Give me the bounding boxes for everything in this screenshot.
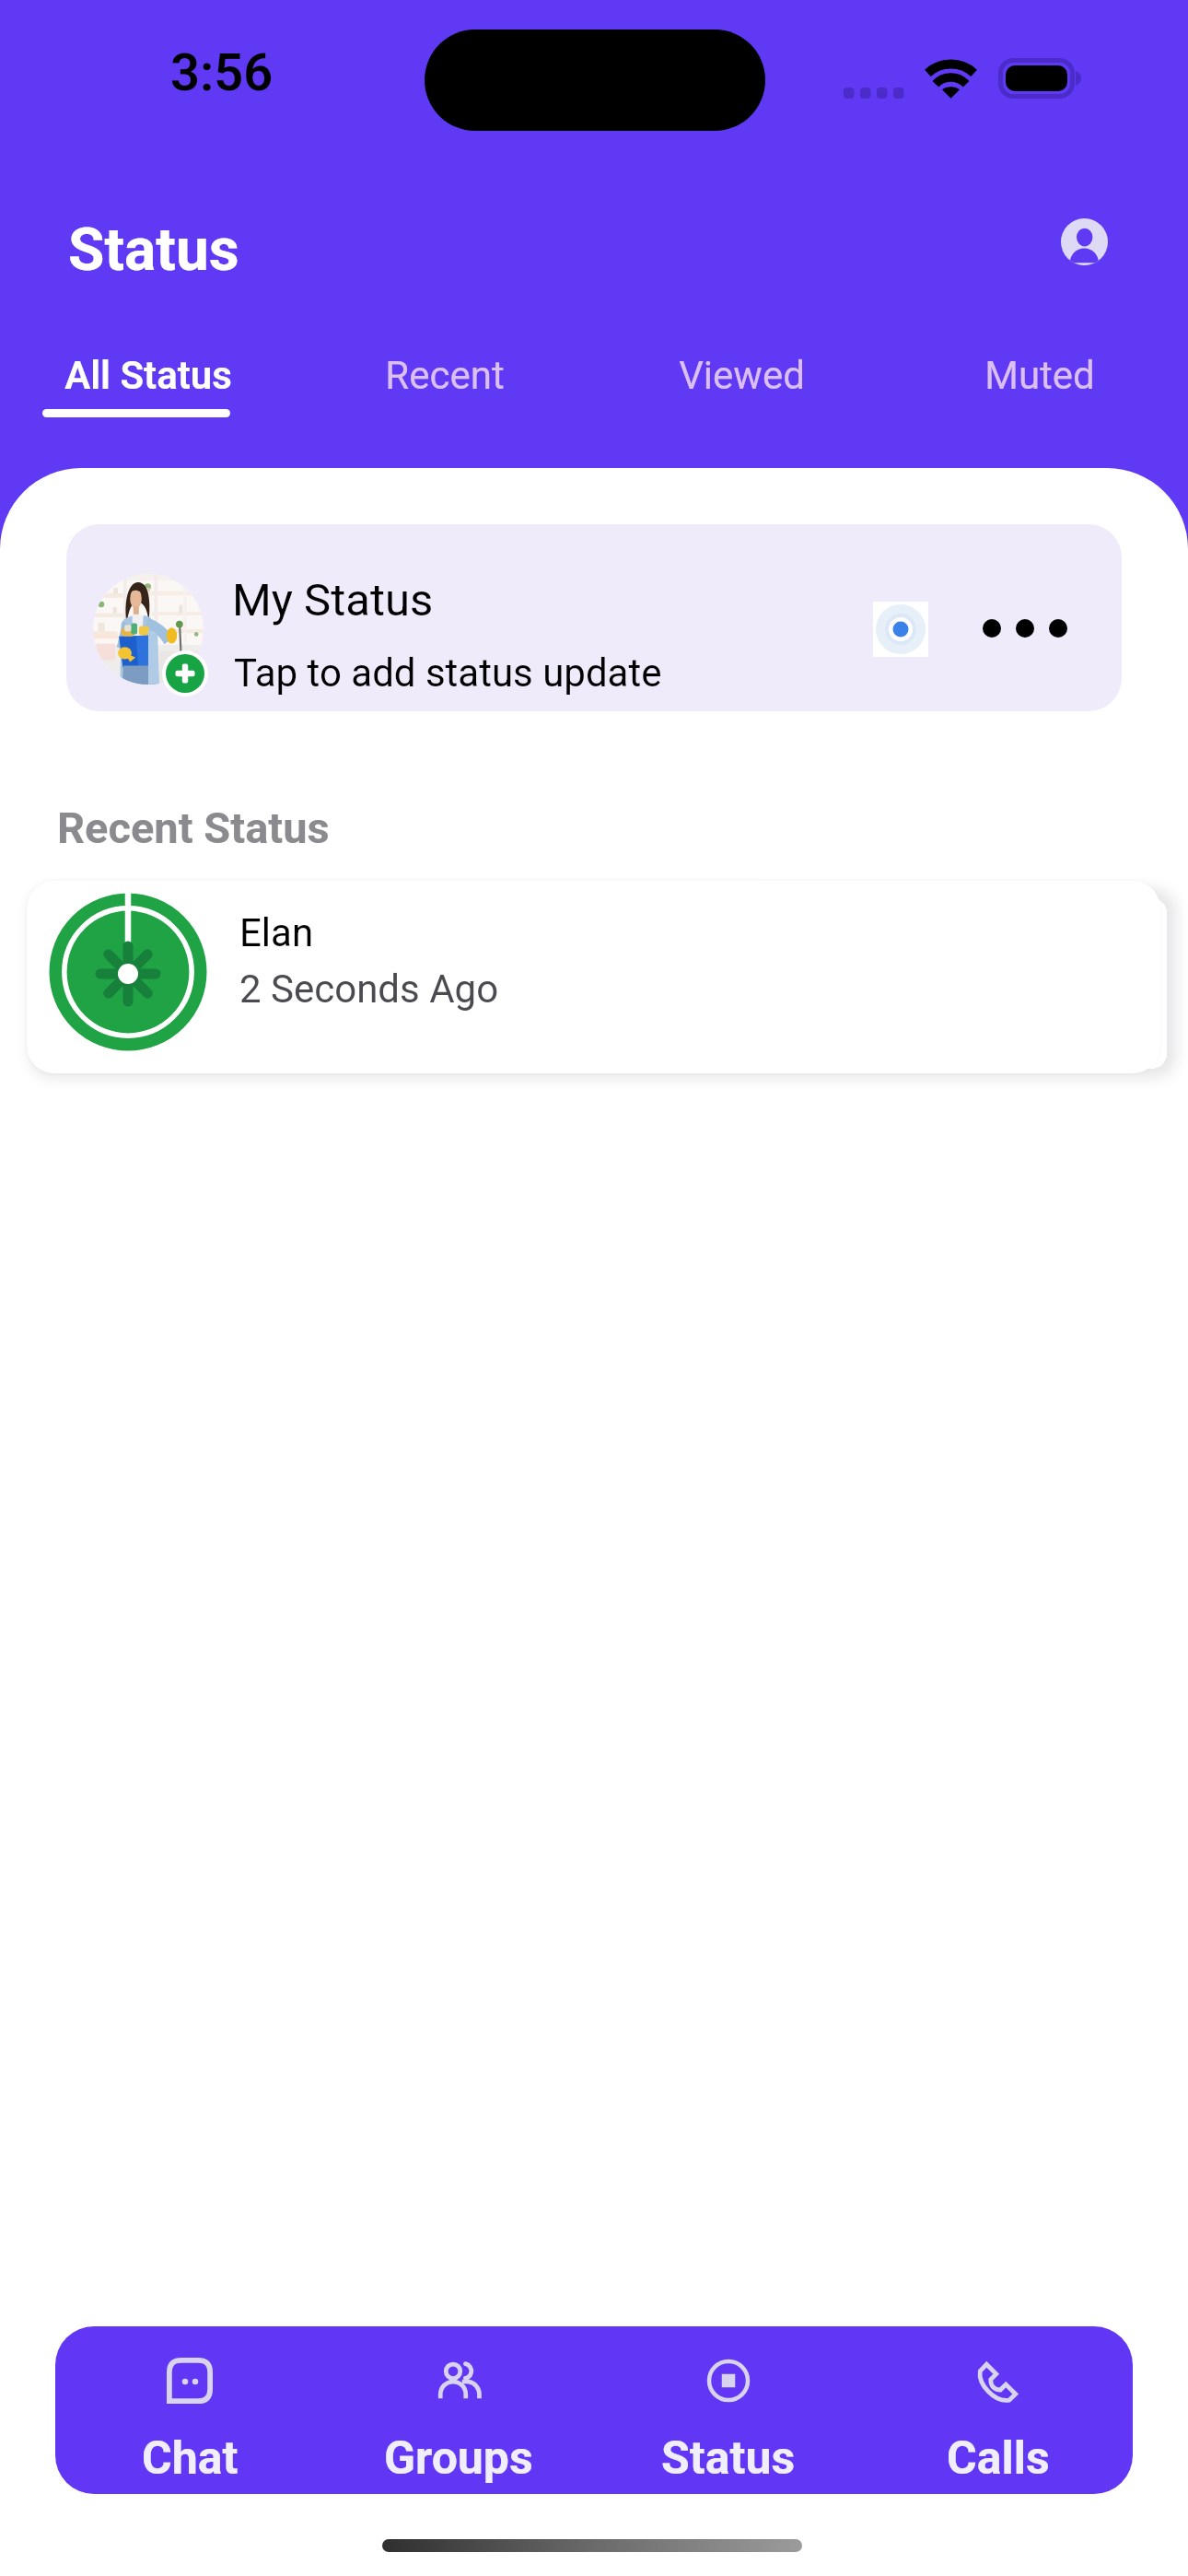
button[interactable]: Muted: [891, 353, 1188, 436]
button[interactable]: Chat: [55, 2326, 324, 2494]
staticText: Muted: [984, 353, 1095, 398]
staticText: Calls: [947, 2431, 1050, 2486]
staticText: Recent: [385, 353, 505, 398]
staticText: Viewed: [679, 353, 805, 398]
staticText: Groups: [384, 2431, 533, 2486]
button[interactable]: Account: [1061, 218, 1108, 265]
staticText: All Status: [64, 353, 232, 398]
button[interactable]: Groups: [324, 2326, 593, 2494]
button[interactable]: Recent: [297, 353, 593, 436]
button[interactable]: My Status: [66, 524, 1122, 711]
staticText: My Status: [232, 574, 434, 626]
staticText: Recent Status: [57, 802, 330, 853]
staticText: 3:56: [170, 42, 274, 103]
staticText: 2 Seconds Ago: [239, 966, 499, 1012]
staticText: Elan: [239, 910, 314, 955]
staticText: Tap to add status update: [234, 650, 662, 696]
button[interactable]: Elan: [27, 881, 1160, 1073]
button[interactable]: More options: [973, 601, 1077, 656]
staticText: Chat: [142, 2431, 239, 2486]
button[interactable]: Viewed: [593, 353, 891, 436]
staticText: Status: [68, 216, 239, 285]
button[interactable]: All Status: [0, 353, 297, 436]
button[interactable]: Live camera: [873, 602, 928, 657]
staticText: Status: [661, 2431, 796, 2486]
button[interactable]: Calls: [863, 2326, 1133, 2494]
button[interactable]: Status: [593, 2326, 863, 2494]
